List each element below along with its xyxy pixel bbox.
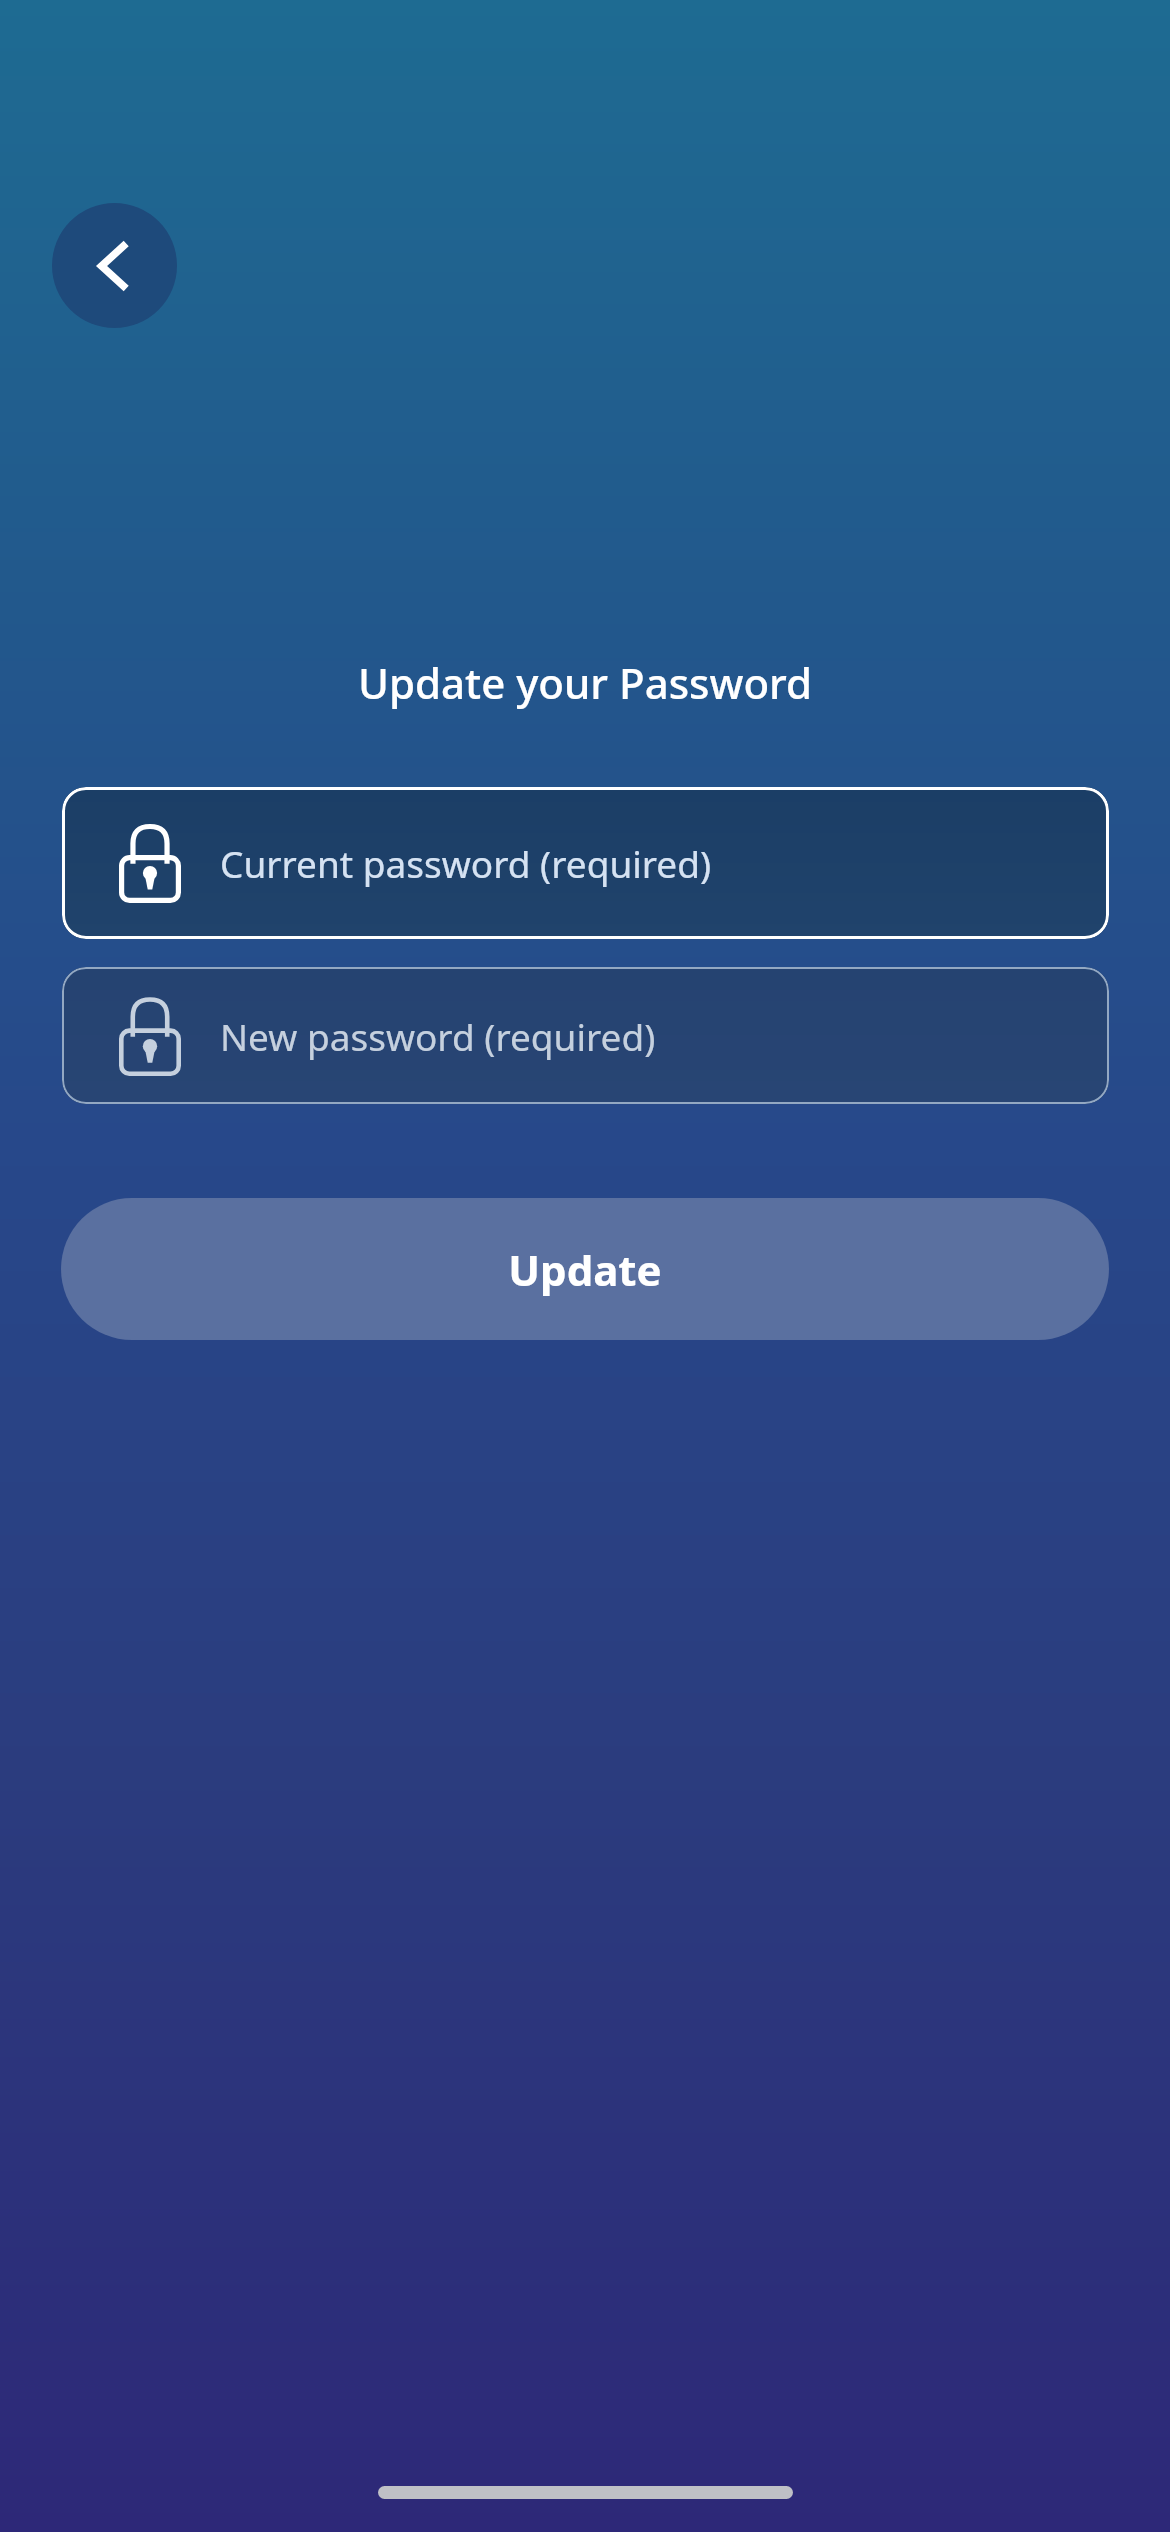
staticText: Current password (required)	[220, 838, 712, 888]
staticText: Update	[508, 1241, 662, 1298]
button[interactable]: New password (required)	[62, 967, 1109, 1104]
staticText: Update your Password	[0, 654, 1170, 711]
button[interactable]: Current password (required)	[62, 787, 1109, 939]
staticText: New password (required)	[220, 1011, 656, 1061]
button[interactable]: Update	[61, 1198, 1109, 1340]
button[interactable]: Back	[52, 203, 177, 328]
